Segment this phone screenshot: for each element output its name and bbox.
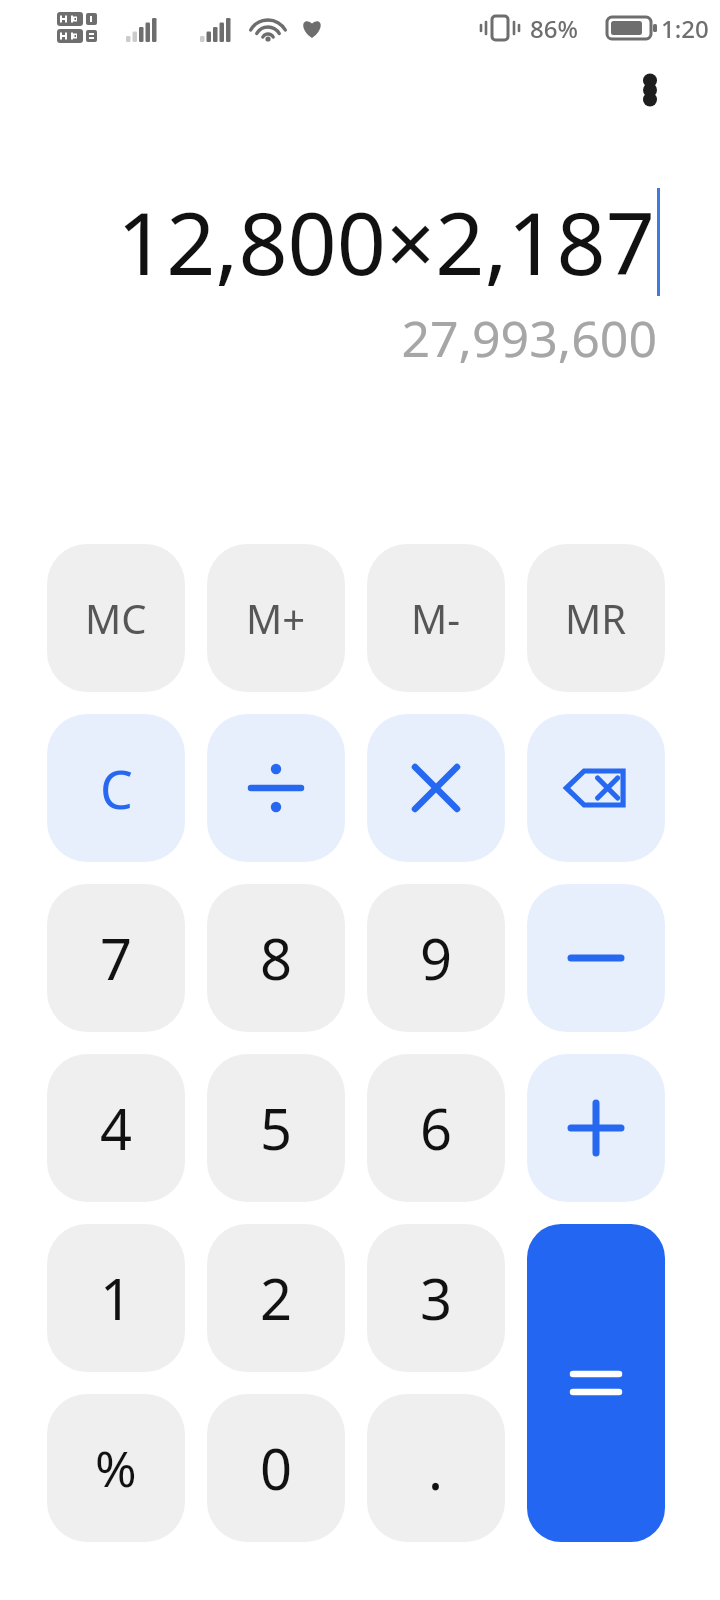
button[interactable]: M- [367, 544, 505, 692]
button[interactable]: Divide [207, 714, 345, 862]
button[interactable]: More options [622, 62, 678, 118]
staticText: 8 [260, 920, 293, 996]
staticText: MR [565, 591, 627, 645]
button[interactable]: 4 [47, 1054, 185, 1202]
staticText: M+ [246, 591, 306, 645]
staticText: 1:20 [661, 12, 709, 45]
staticText: 27,993,600 [24, 304, 657, 372]
staticText: 1 [100, 1260, 133, 1336]
button[interactable]: 6 [367, 1054, 505, 1202]
staticText: 86% [530, 12, 578, 45]
button[interactable]: 9 [367, 884, 505, 1032]
staticText: 9 [420, 920, 453, 996]
button[interactable]: 0 [207, 1394, 345, 1542]
button[interactable]: Clear [47, 714, 185, 862]
button[interactable]: 7 [47, 884, 185, 1032]
button[interactable]: 2 [207, 1224, 345, 1372]
staticText: . [428, 1430, 444, 1506]
button[interactable]: 8 [207, 884, 345, 1032]
staticText: % [95, 1434, 137, 1502]
staticText: MC [85, 591, 147, 645]
button[interactable]: MC [47, 544, 185, 692]
button[interactable]: MR [527, 544, 665, 692]
staticText: M- [411, 591, 461, 645]
staticText: 2 [260, 1260, 293, 1336]
button[interactable]: Plus [527, 1054, 665, 1202]
button[interactable]: M+ [207, 544, 345, 692]
staticText: 12,800×2,187 [24, 183, 655, 300]
button[interactable]: Decimal point [367, 1394, 505, 1542]
button[interactable]: 3 [367, 1224, 505, 1372]
staticText: 0 [260, 1430, 293, 1506]
staticText: 5 [260, 1090, 293, 1166]
staticText: 7 [100, 920, 133, 996]
button[interactable]: Backspace [527, 714, 665, 862]
staticText: 3 [420, 1260, 453, 1336]
button[interactable]: Equals [527, 1224, 665, 1542]
button[interactable]: Multiply [367, 714, 505, 862]
staticText: 6 [420, 1090, 453, 1166]
button[interactable]: Minus [527, 884, 665, 1032]
staticText: C [100, 753, 133, 824]
button[interactable]: Percent [47, 1394, 185, 1542]
button[interactable]: 1 [47, 1224, 185, 1372]
button[interactable]: 5 [207, 1054, 345, 1202]
staticText: 4 [100, 1090, 133, 1166]
